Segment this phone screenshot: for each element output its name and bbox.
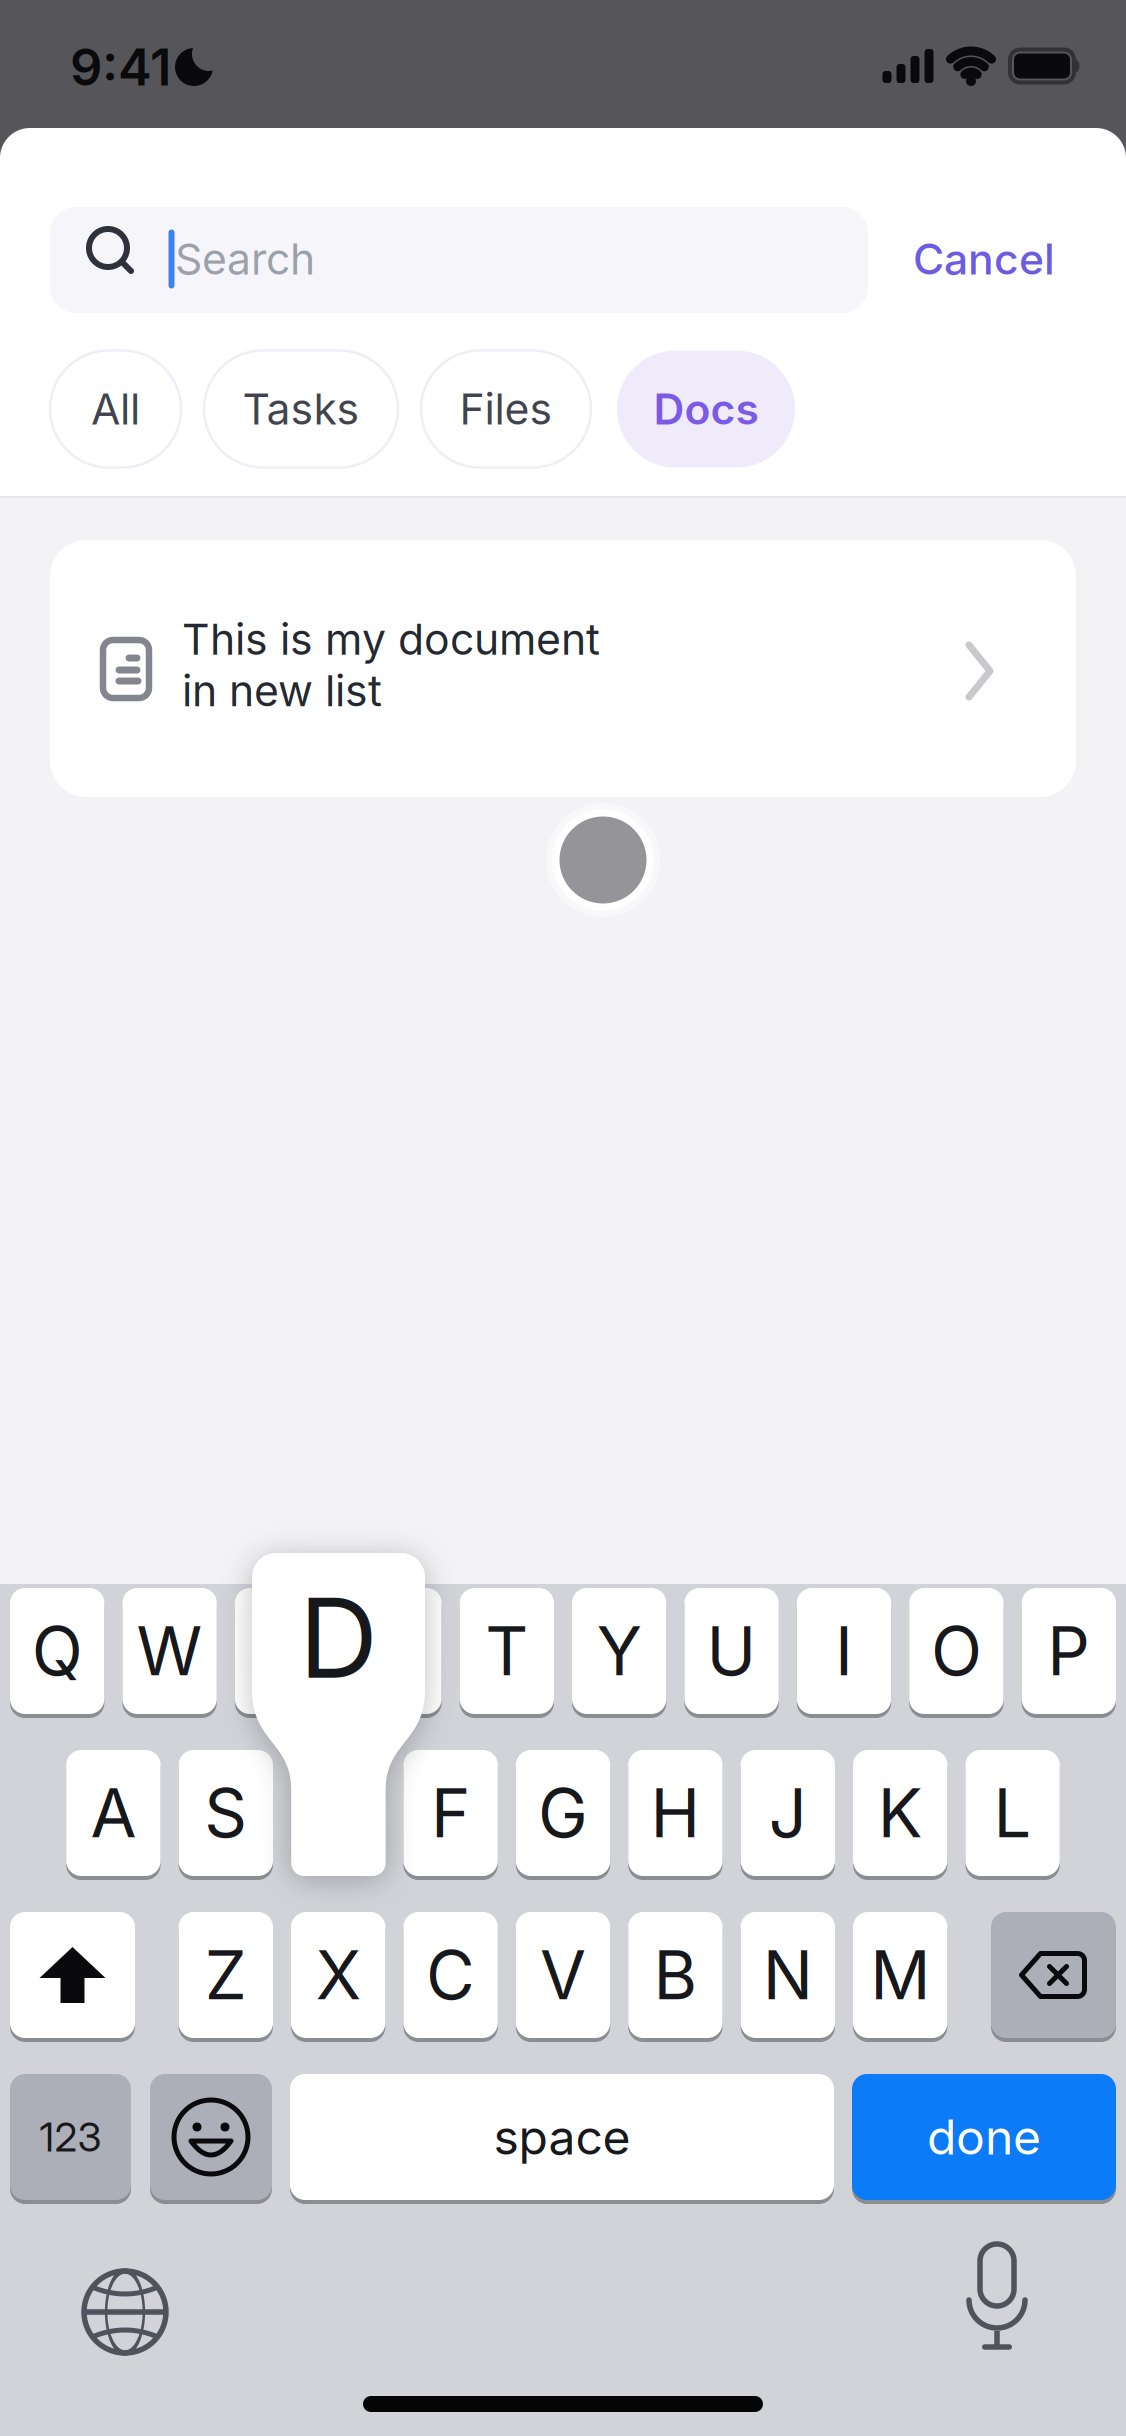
button[interactable]: M (853, 1910, 947, 2040)
button[interactable]: H (628, 1748, 723, 1878)
button[interactable]: A (66, 1748, 161, 1878)
button[interactable]: Delete (991, 1910, 1116, 2040)
button[interactable]: C (403, 1910, 498, 2040)
staticText: F (431, 1773, 470, 1853)
button[interactable]: V (516, 1910, 610, 2040)
staticText: in new list (182, 665, 382, 717)
staticText: Y (597, 1611, 642, 1691)
staticText: W (137, 1611, 203, 1691)
staticText: C (426, 1935, 475, 2015)
staticText: This is my document (182, 613, 600, 665)
staticText: 9:41 (70, 36, 171, 98)
staticText: T (485, 1611, 528, 1691)
button[interactable]: T (460, 1586, 554, 1716)
button[interactable]: 123 (10, 2072, 131, 2202)
button[interactable]: G (516, 1748, 610, 1878)
staticText: V (540, 1935, 586, 2015)
button[interactable]: Files (421, 350, 591, 467)
button[interactable]: W (122, 1586, 217, 1716)
button[interactable]: Dictation (962, 2250, 1032, 2350)
button[interactable]: P (1022, 1586, 1116, 1716)
button[interactable]: I (797, 1586, 891, 1716)
button[interactable]: F (403, 1748, 498, 1878)
staticText: Docs (653, 383, 758, 435)
button[interactable] (347, 1586, 442, 1716)
staticText: Search (175, 233, 315, 285)
staticText: Tasks (242, 383, 359, 435)
staticText: L (994, 1773, 1032, 1853)
button[interactable]: Emoji (150, 2072, 272, 2202)
button[interactable]: Tasks (204, 350, 398, 467)
button[interactable]: K (853, 1748, 947, 1878)
staticText: M (870, 1935, 930, 2015)
button[interactable]: space (290, 2072, 834, 2202)
button[interactable]: B (628, 1910, 723, 2040)
button[interactable]: Z (179, 1910, 273, 2040)
staticText: U (707, 1611, 757, 1691)
button[interactable]: Q (10, 1586, 104, 1716)
button[interactable]: Next keyboard (81, 2268, 169, 2356)
staticText: H (650, 1773, 700, 1853)
button[interactable]: L (965, 1748, 1060, 1878)
button[interactable]: Shift (10, 1910, 135, 2040)
button[interactable]: J (741, 1748, 835, 1878)
staticText: I (835, 1611, 853, 1691)
staticText: D (299, 1572, 378, 1704)
staticText: Files (459, 383, 552, 435)
staticText: X (316, 1935, 361, 2015)
button[interactable] (235, 1586, 329, 1716)
staticText: G (538, 1773, 588, 1853)
staticText: done (927, 2108, 1041, 2166)
staticText: K (878, 1773, 923, 1853)
staticText: S (204, 1773, 247, 1853)
button[interactable]: Search (50, 207, 868, 313)
button[interactable]: U (684, 1586, 779, 1716)
staticText: Q (32, 1611, 83, 1691)
staticText: A (90, 1773, 136, 1853)
staticText: P (1047, 1611, 1090, 1691)
button[interactable]: N (741, 1910, 835, 2040)
button[interactable]: S (179, 1748, 273, 1878)
staticText: Z (205, 1935, 247, 2015)
button[interactable]: X (291, 1910, 385, 2040)
staticText: O (931, 1611, 982, 1691)
button[interactable]: Docs (617, 350, 795, 467)
button[interactable]: All (50, 350, 181, 467)
button[interactable]: This is my document (50, 540, 1076, 797)
button[interactable]: Y (572, 1586, 666, 1716)
button[interactable]: O (909, 1586, 1004, 1716)
button[interactable]: done (852, 2072, 1116, 2202)
staticText: B (653, 1935, 697, 2015)
staticText: J (769, 1773, 807, 1853)
staticText: N (763, 1935, 813, 2015)
staticText: Cancel (913, 233, 1055, 285)
staticText: All (91, 383, 140, 435)
staticText: 123 (39, 2113, 101, 2161)
staticText: space (493, 2108, 630, 2166)
button[interactable]: Cancel (913, 233, 1055, 285)
